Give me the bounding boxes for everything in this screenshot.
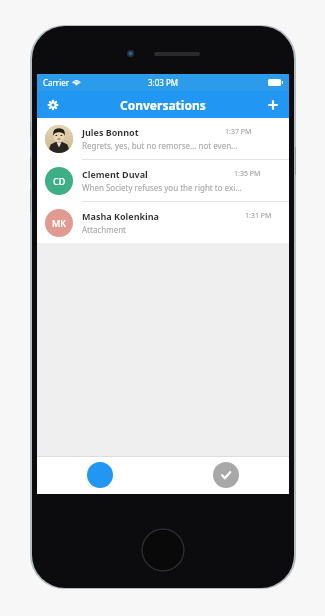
staticText: MK (52, 217, 66, 229)
staticText: Regrets, yes, but no remorse... not even… (82, 140, 238, 151)
staticText: Jules Bonnot (82, 126, 139, 138)
button[interactable]: Jules Bonnot (37, 118, 289, 159)
staticText: CD (53, 175, 66, 187)
staticText: Attachment (82, 224, 126, 235)
staticText: Masha Kolenkina (82, 210, 159, 222)
button[interactable]: Settings (41, 93, 65, 117)
staticText: Carrier (43, 77, 70, 88)
staticText: When Society refuses you the right to ex… (82, 182, 242, 193)
staticText: 1:35 PM (234, 169, 261, 179)
button[interactable]: Compose (87, 462, 113, 488)
staticText: Conversations (120, 97, 206, 113)
staticText: 1:31 PM (245, 211, 272, 221)
staticText: 1:37 PM (225, 127, 252, 137)
staticText: 3:03 PM (148, 77, 179, 88)
button[interactable]: Select (213, 462, 239, 488)
button[interactable]: CD (37, 160, 289, 201)
button[interactable]: New conversation (261, 93, 285, 117)
staticText: Clement Duval (82, 168, 148, 180)
button[interactable]: MK (37, 202, 289, 243)
button[interactable]: Home (141, 528, 185, 572)
